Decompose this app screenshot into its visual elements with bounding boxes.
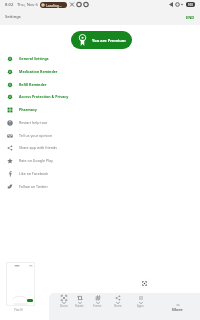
- staticText: Tell us your opinion: [19, 133, 52, 138]
- button[interactable]: You are Premium: [71, 31, 132, 49]
- staticText: Rotate: [75, 304, 84, 308]
- staticText: Share: [114, 304, 122, 308]
- staticText: More: [172, 307, 183, 313]
- staticText: Frame: [93, 304, 102, 308]
- staticText: Settings: [5, 14, 21, 19]
- button[interactable]: General Settings: [0, 52, 200, 65]
- button[interactable]: Zoom: [57, 295, 70, 308]
- button[interactable]: Rate on Google Play: [0, 154, 200, 167]
- button[interactable]: Pharmacy: [0, 103, 200, 116]
- button[interactable]: Tell us your opinion: [0, 129, 200, 142]
- button[interactable]: Follow on Twitter: [0, 180, 200, 193]
- staticText: General Settings: [19, 56, 49, 61]
- staticText: Like on Facebook: [19, 171, 49, 176]
- staticText: Refill Reminder: [19, 82, 47, 87]
- staticText: You are Premium: [92, 38, 126, 43]
- button[interactable]: Share: [111, 295, 124, 308]
- staticText: Loading...: [46, 3, 62, 8]
- staticText: Apps: [137, 304, 144, 308]
- staticText: Restart help tour: [19, 120, 48, 125]
- staticText: Access Protection & Privacy: [19, 94, 69, 99]
- button[interactable]: END: [185, 14, 196, 21]
- staticText: Share app with friends: [19, 145, 57, 150]
- staticText: Follow on Twitter: [19, 184, 48, 189]
- staticText: Medication Reminder: [19, 69, 58, 74]
- staticText: Rate on Google Play: [19, 158, 53, 163]
- staticText: 100: [188, 3, 193, 7]
- button[interactable]: Refill Reminder: [0, 78, 200, 91]
- button[interactable]: Restart help tour: [0, 116, 200, 129]
- staticText: Zoom: [60, 304, 68, 308]
- staticText: END: [186, 15, 195, 20]
- button[interactable]: Access Protection & Privacy: [0, 90, 200, 103]
- button[interactable]: Apps: [134, 295, 147, 308]
- staticText: 8:02: [5, 2, 14, 8]
- button[interactable]: Medication Reminder: [0, 65, 200, 78]
- button[interactable]: Rotate: [73, 295, 86, 308]
- button[interactable]: Like on Facebook: [0, 167, 200, 180]
- button[interactable]: More: [172, 304, 183, 313]
- button[interactable]: Full screen: [140, 279, 149, 288]
- button[interactable]: Share app with friends: [0, 141, 200, 154]
- button[interactable]: Frame: [91, 295, 104, 308]
- staticText: Pixel 6: [14, 308, 24, 312]
- staticText: Pharmacy: [19, 107, 37, 112]
- staticText: Thu, Nov 6: [17, 2, 38, 8]
